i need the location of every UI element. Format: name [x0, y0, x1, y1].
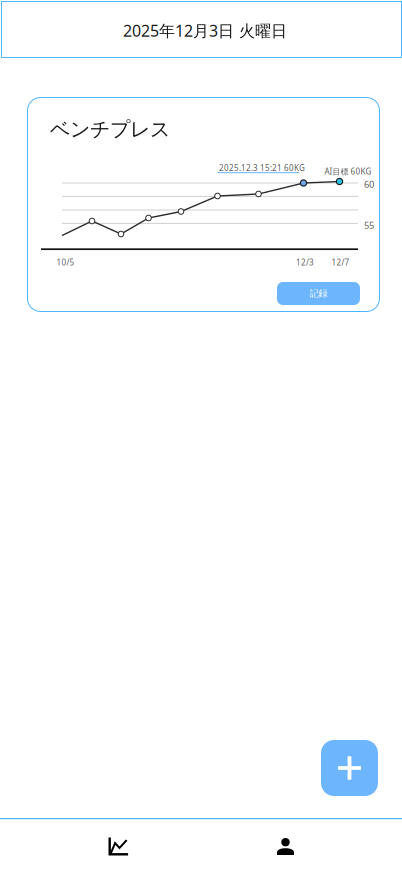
- button[interactable]: 記録: [277, 282, 360, 305]
- button[interactable]: Profile: [202, 819, 369, 874]
- button[interactable]: Records: [35, 819, 202, 874]
- staticText: 2025.12.3 15:21 60KG: [219, 162, 305, 173]
- staticText: AI目標 60KG: [324, 166, 371, 177]
- staticText: ベンチプレス: [50, 117, 170, 142]
- button[interactable]: Add record: [321, 740, 378, 796]
- staticText: 記録: [309, 288, 327, 299]
- staticText: 10/5: [56, 257, 74, 268]
- staticText: 60: [364, 178, 374, 190]
- staticText: 12/3: [296, 257, 314, 268]
- staticText: 55: [364, 219, 374, 231]
- staticText: 12/7: [331, 257, 349, 268]
- staticText: 2025年12月3日 火曜日: [123, 20, 287, 41]
